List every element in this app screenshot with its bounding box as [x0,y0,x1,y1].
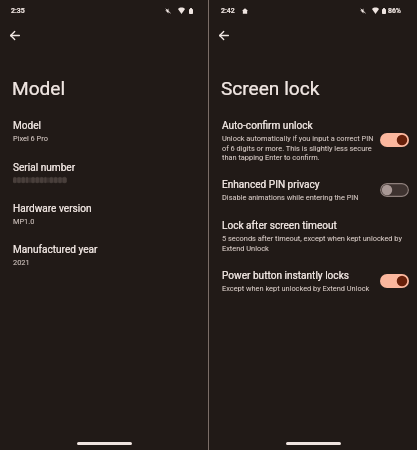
button[interactable]: Navigate up [4,24,26,46]
staticText: Screen lock [221,77,320,99]
button[interactable]: Serial number [0,158,208,187]
staticText: Pixel 6 Pro [13,134,48,143]
staticText: 2021 [13,258,30,267]
button[interactable]: Lock after screen timeout [209,216,417,255]
button[interactable]: Hardware version [0,199,208,229]
button[interactable]: Switch off [380,183,409,197]
button[interactable]: Switch on [380,274,409,288]
button[interactable]: Power button instantly locks [209,266,417,296]
staticText: Hardware version [13,203,92,215]
staticText: Model [12,77,66,99]
staticText: 86% [388,7,401,15]
staticText: 2:42 [221,7,235,15]
staticText: 2:35 [11,7,25,15]
staticText: Model [13,120,42,132]
staticText: Unlock automatically if you input a corr… [222,134,380,161]
button[interactable]: Model [0,116,208,146]
staticText: MP1.0 [13,217,35,226]
staticText: Power button instantly locks [222,270,349,282]
button[interactable]: Switch on [380,133,409,147]
staticText: Auto-confirm unlock [222,120,313,132]
staticText: Enhanced PIN privacy [222,179,320,191]
button[interactable]: Navigate up [213,24,235,46]
staticText: Manufactured year [13,244,98,256]
button[interactable]: Auto-confirm unlock [209,116,417,164]
button[interactable]: Enhanced PIN privacy [209,175,417,205]
button[interactable]: Manufactured year [0,240,208,270]
staticText: Serial number [13,162,76,174]
staticText: Except when kept unlocked by Extend Unlo… [222,284,370,293]
staticText: Disable animations while entering the PI… [222,193,359,202]
staticText: Lock after screen timeout [222,220,337,232]
staticText: 5 seconds after timeout, except when kep… [222,234,413,252]
